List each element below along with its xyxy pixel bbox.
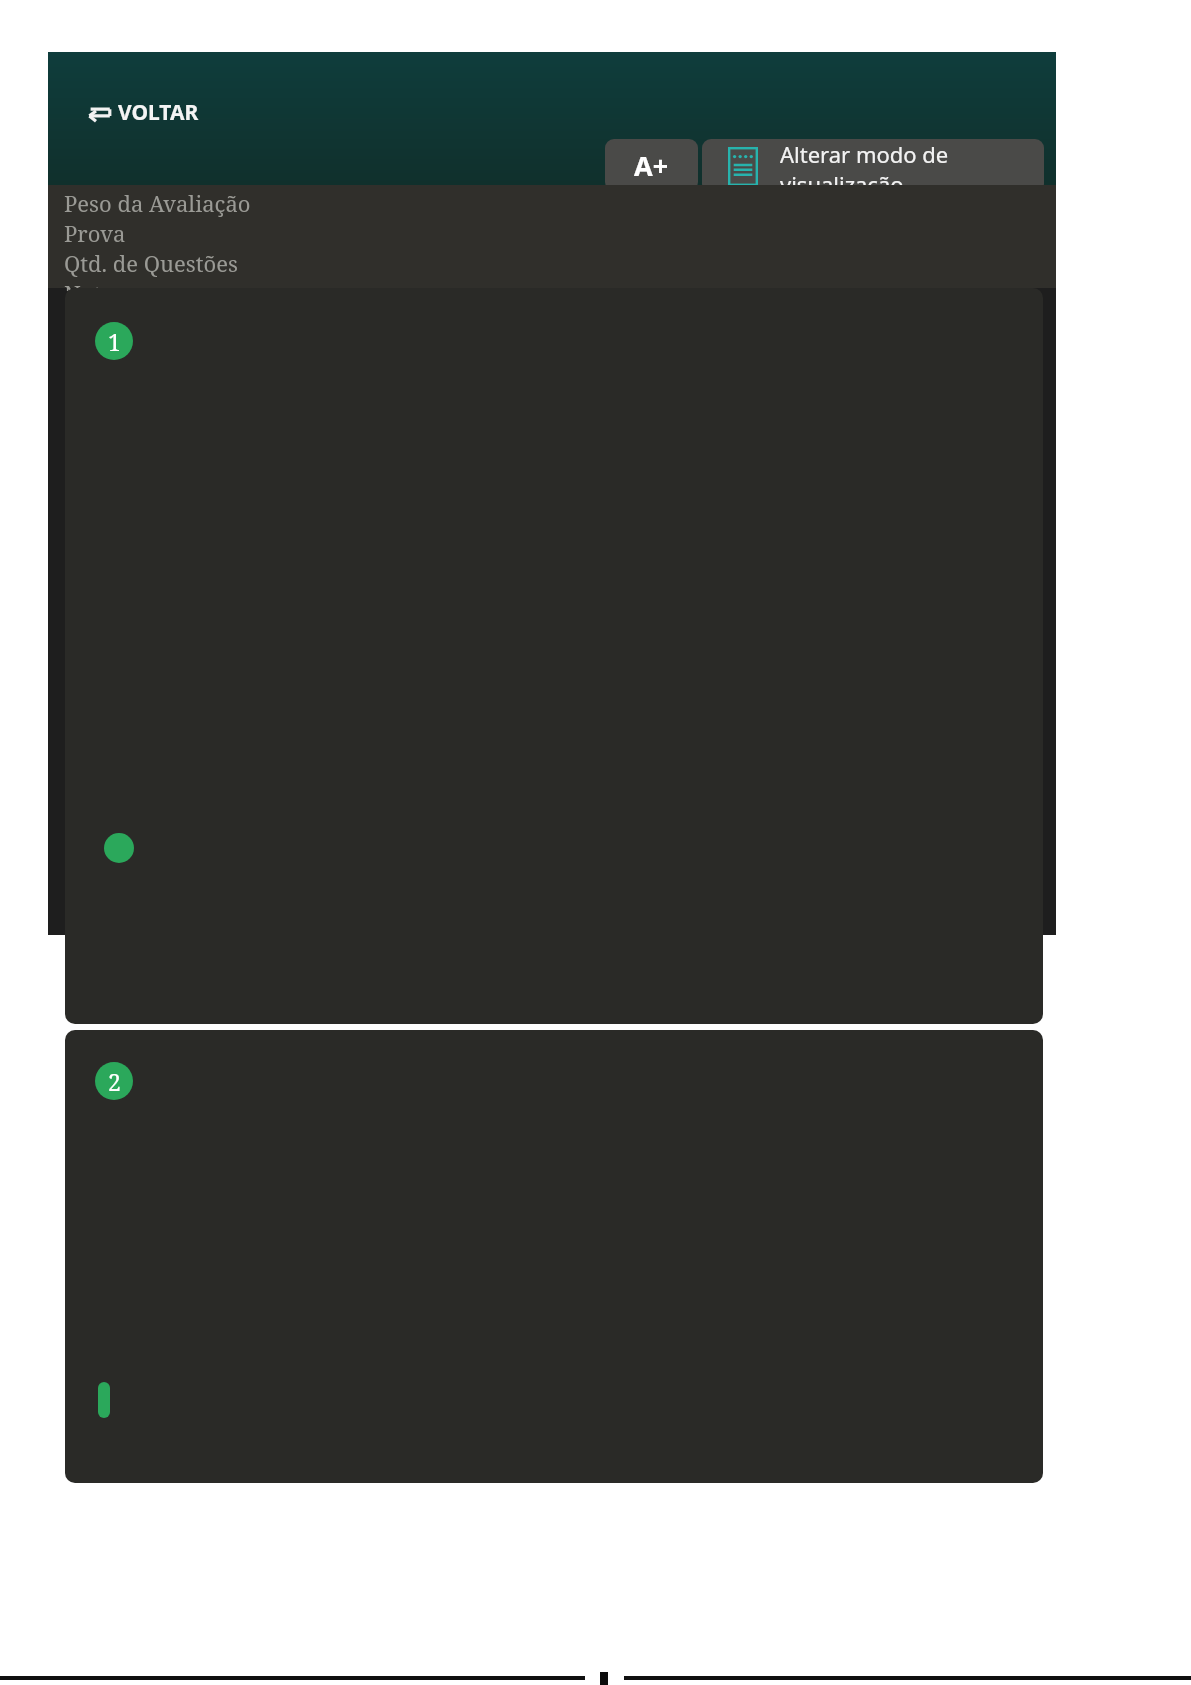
- button[interactable]: 1: [65, 288, 1043, 1024]
- staticText: Qtd. de Questões: [64, 248, 238, 278]
- button[interactable]: Alterar modo de visualização: [702, 139, 1044, 193]
- staticText: Prova: [64, 218, 126, 248]
- staticText: 1: [108, 326, 121, 357]
- staticText: Nota: [64, 278, 114, 291]
- button[interactable]: A+: [605, 139, 698, 191]
- button[interactable]: VOLTAR: [80, 94, 203, 131]
- staticText: VOLTAR: [118, 98, 199, 127]
- staticText: Peso da Avaliação: [64, 188, 251, 218]
- staticText: 2: [108, 1066, 121, 1097]
- staticText: Alterar modo de visualização: [780, 139, 1044, 193]
- staticText: A+: [634, 147, 669, 184]
- button[interactable]: 2: [65, 1030, 1043, 1483]
